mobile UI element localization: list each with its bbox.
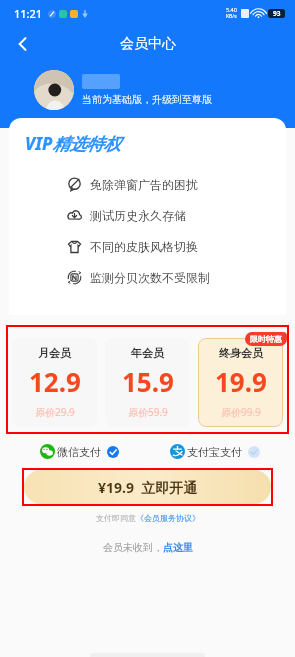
staticText: 月会员 (38, 346, 71, 360)
staticText: 微信支付 (57, 445, 101, 459)
button[interactable]: 支付宝支付 (147, 441, 283, 462)
staticText: 当前为基础版，升级到至尊版 (82, 93, 212, 106)
staticText: 点这里 (163, 541, 193, 554)
staticText: 《会员服务协议》 (136, 513, 200, 523)
staticText: 原价29.9 (35, 405, 75, 419)
staticText: KB/s (226, 13, 237, 20)
staticText: 19.9 (215, 364, 267, 399)
staticText: 11:21 (14, 6, 43, 21)
button[interactable]: ¥19.9 立即开通 (24, 470, 271, 504)
staticText: 年会员 (131, 346, 164, 360)
button[interactable]: 测试历史永久存储 (9, 200, 286, 231)
button[interactable]: 不同的皮肤风格切换 (9, 231, 286, 262)
button[interactable]: 免除弹窗广告的困扰 (9, 169, 286, 200)
button[interactable]: 年会员 (105, 338, 190, 427)
button[interactable]: 返回 (6, 27, 40, 61)
staticText: 15.9 (122, 364, 174, 399)
staticText: ¥19.9 立即开通 (98, 478, 198, 497)
button[interactable]: 点这里 (163, 541, 193, 554)
button[interactable]: 月会员 (12, 338, 97, 427)
staticText: 支付宝支付 (187, 445, 242, 459)
staticText: 免除弹窗广告的困扰 (90, 177, 198, 192)
staticText: 不同的皮肤风格切换 (90, 239, 198, 254)
button[interactable]: 监测分贝次数不受限制 (9, 262, 286, 293)
button[interactable]: 《会员服务协议》 (136, 513, 200, 523)
staticText: 会员未收到， (103, 541, 163, 554)
staticText: 测试历史永久存储 (90, 208, 186, 223)
staticText: 支付即同意 (96, 513, 136, 523)
staticText: 终身会员 (219, 346, 263, 360)
staticText: 93 (273, 9, 281, 18)
button[interactable]: 终身会员 (198, 338, 283, 427)
staticText: 限时特惠 (250, 334, 282, 344)
staticText: 5.40 (226, 6, 237, 13)
staticText: VIP精选特权 (25, 132, 121, 155)
staticText: 原价99.9 (221, 405, 261, 419)
staticText: 会员中心 (120, 35, 176, 53)
staticText: 原价59.9 (128, 405, 168, 419)
staticText: 监测分贝次数不受限制 (90, 270, 210, 285)
button[interactable]: 微信支付 (12, 441, 147, 462)
staticText: 12.9 (29, 364, 81, 399)
